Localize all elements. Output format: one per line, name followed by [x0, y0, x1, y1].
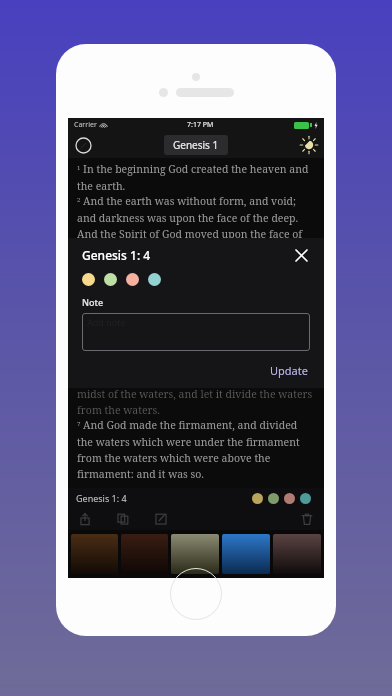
staticText: Genesis 1: 4 — [76, 492, 127, 504]
button[interactable]: Background image — [171, 534, 219, 574]
button[interactable]: Highlight colour — [252, 493, 263, 504]
button[interactable]: Update — [268, 361, 310, 380]
button[interactable]: Browse — [74, 136, 92, 154]
staticText: 7 And God made the firmament, and divide… — [77, 418, 315, 481]
staticText: 2 And the earth was without form, and vo… — [77, 194, 315, 257]
button[interactable]: Add note — [82, 313, 310, 351]
button[interactable]: Highlight colour — [82, 273, 95, 286]
staticText: 6 And God said, Let there be a firmament… — [77, 370, 315, 417]
staticText: Genesis 1: 4 — [82, 247, 151, 263]
staticText: 4 And God saw the light, that it was goo… — [77, 290, 315, 321]
button[interactable]: Close — [292, 246, 310, 264]
staticText: 3 And God said, Let there be light: and … — [77, 258, 315, 289]
button[interactable]: Highlight colour — [284, 493, 295, 504]
button[interactable]: Highlight colour — [126, 273, 139, 286]
button[interactable]: Share — [77, 511, 93, 527]
button[interactable]: Background image — [222, 534, 270, 574]
button[interactable]: Highlight colour — [148, 273, 161, 286]
button[interactable]: Background image — [273, 534, 321, 574]
button[interactable]: Highlight colour — [300, 493, 311, 504]
staticText: Add note — [87, 316, 126, 328]
staticText: Genesis 1 — [173, 138, 219, 152]
button[interactable]: Background image — [121, 534, 168, 574]
button[interactable]: Genesis 1 — [164, 135, 228, 155]
button[interactable]: Highlight colour — [104, 273, 117, 286]
button[interactable]: Theme — [300, 136, 318, 154]
staticText: Update — [270, 363, 308, 378]
staticText: 5 And God called the light Day, and the … — [77, 322, 315, 369]
button[interactable]: Delete — [299, 511, 315, 527]
button[interactable]: Copy — [115, 511, 131, 527]
button[interactable]: Edit — [153, 511, 169, 527]
button[interactable]: Background image — [71, 534, 118, 574]
staticText: 7:17 PM — [187, 120, 214, 130]
staticText: Note — [82, 296, 104, 308]
staticText: 1 In the beginning God created the heave… — [77, 162, 315, 193]
staticText: Carrier — [74, 120, 97, 130]
button[interactable]: Highlight colour — [268, 493, 279, 504]
